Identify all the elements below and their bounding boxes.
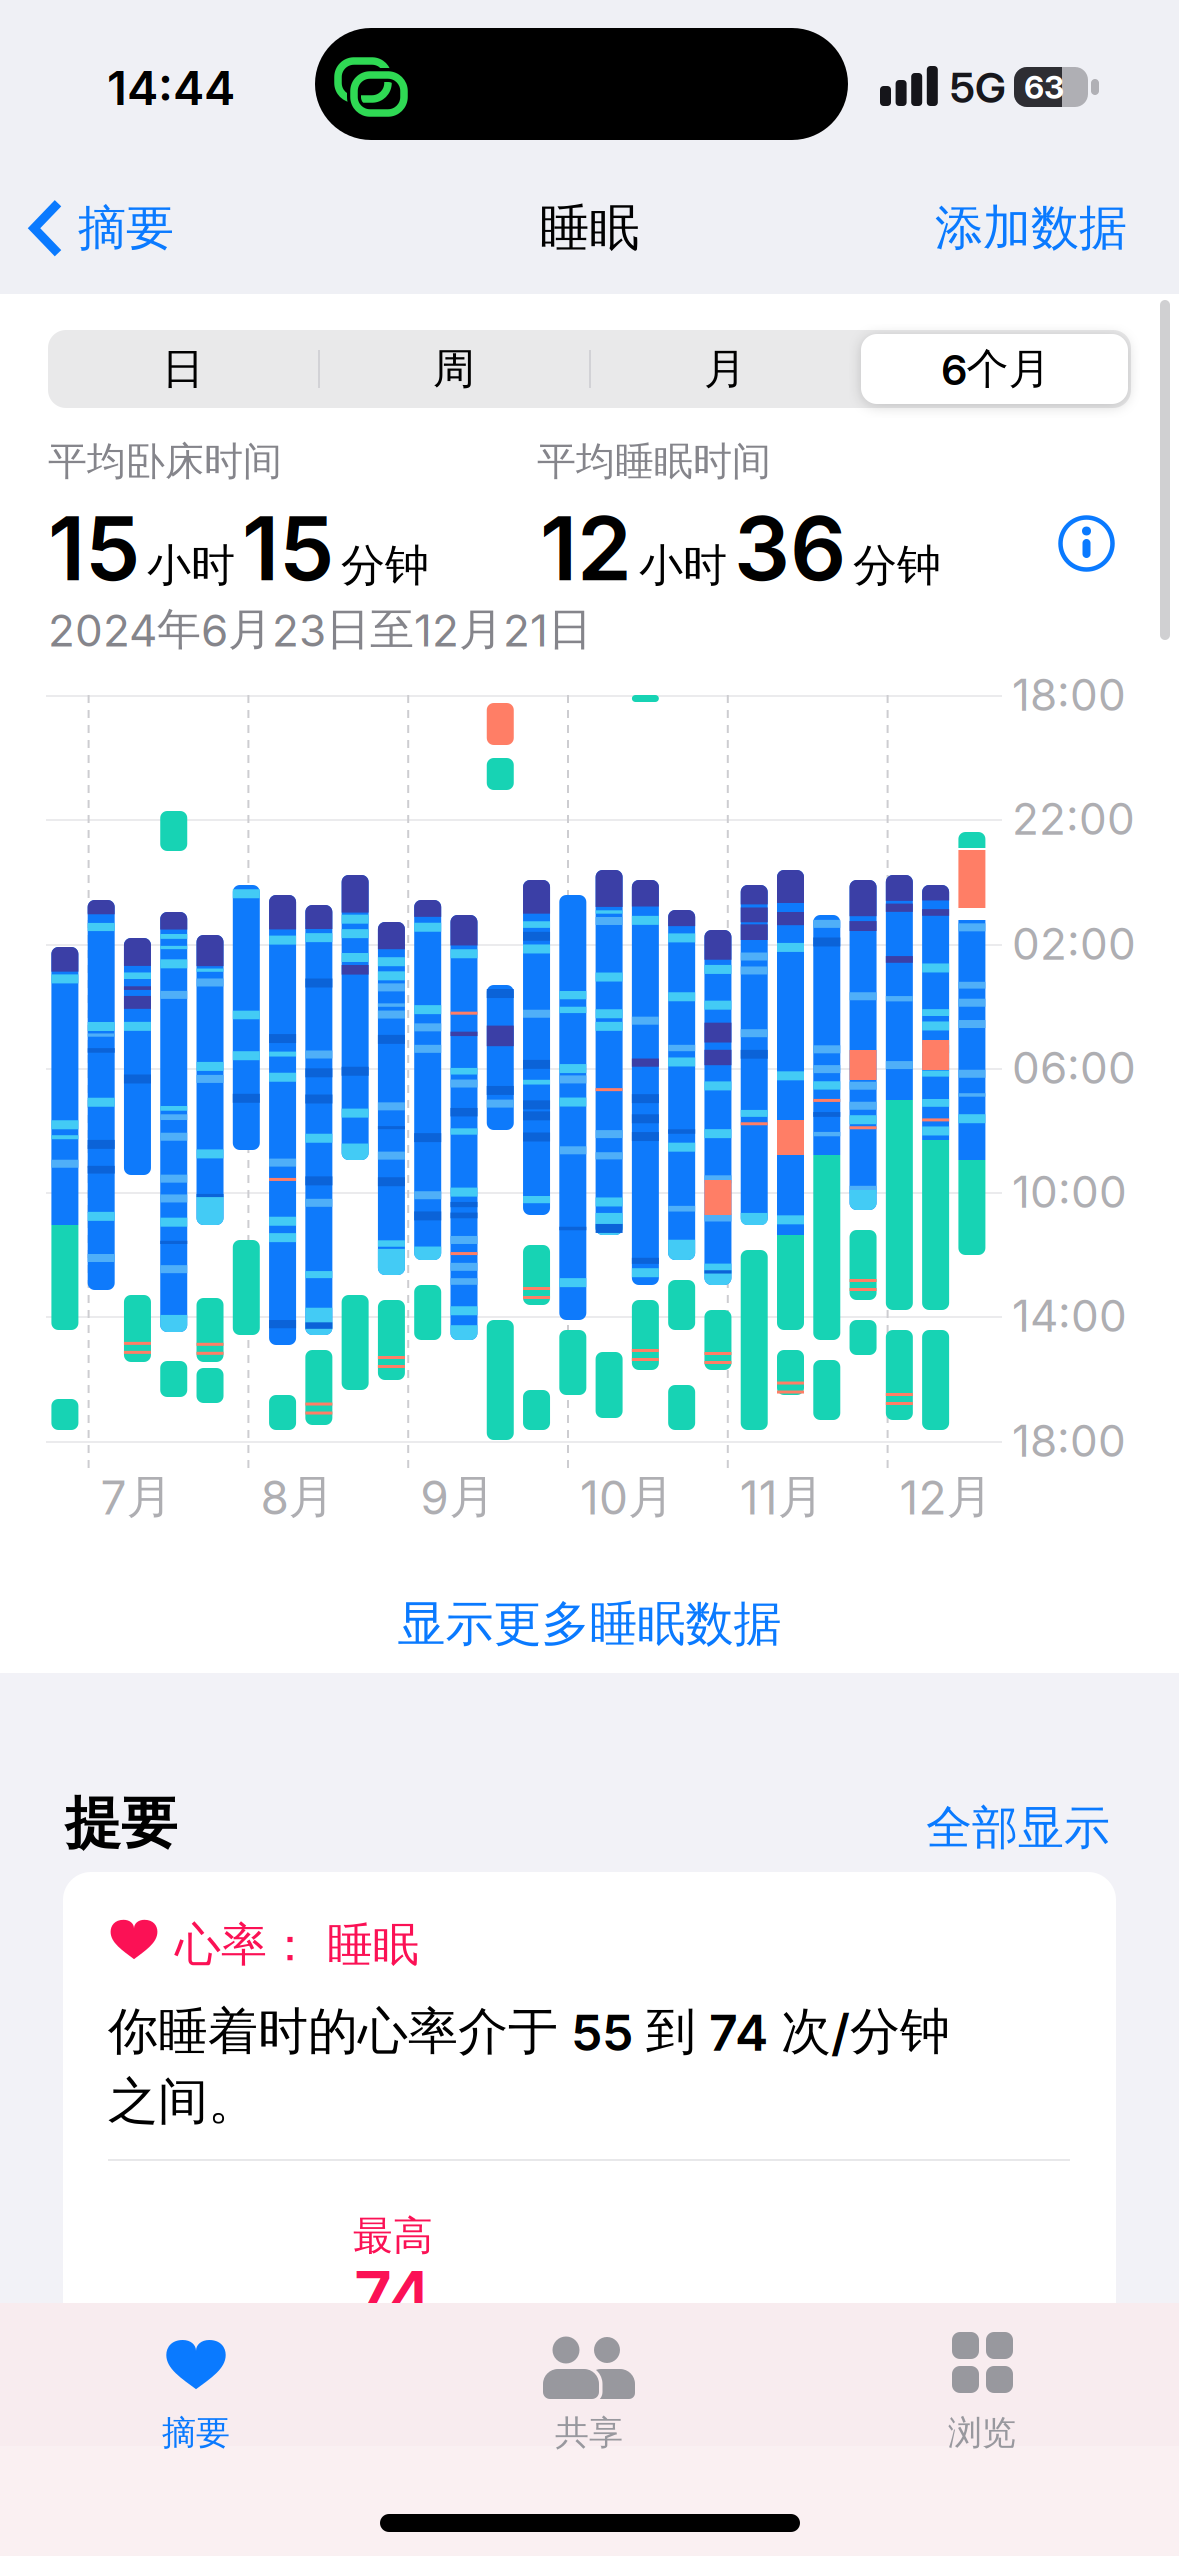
staticText: 9月 <box>420 1468 495 1526</box>
staticText: 2024年6月23日至12月21日 <box>48 602 592 657</box>
staticText: 平均卧床时间 <box>48 437 282 486</box>
staticText: 心率： 睡眠 <box>175 1916 419 1974</box>
staticText: 分钟 <box>341 538 429 593</box>
button[interactable]: 摘要 <box>46 2322 346 2472</box>
staticText: 10:00 <box>1012 1165 1127 1218</box>
staticText: 15 <box>48 495 140 601</box>
staticText: 11月 <box>740 1468 824 1526</box>
staticText: 14:00 <box>1012 1289 1127 1342</box>
button[interactable]: 心率： 睡眠 <box>63 1872 1116 2556</box>
button[interactable]: 周 <box>319 330 589 408</box>
button[interactable]: 月 <box>590 330 860 408</box>
staticText: 显示更多睡眠数据 <box>397 1594 781 1654</box>
staticText: 15 <box>242 495 334 601</box>
staticText: 分钟 <box>853 538 941 593</box>
button[interactable]: 浏览 <box>832 2322 1132 2472</box>
staticText: 月 <box>704 342 746 395</box>
staticText: 36 <box>734 495 846 601</box>
button[interactable]: 信息 <box>1058 515 1115 572</box>
staticText: 摘要 <box>78 198 174 258</box>
staticText: 之间。 <box>108 2070 258 2133</box>
staticText: 10月 <box>580 1468 674 1526</box>
staticText: 74 <box>354 2255 432 2335</box>
staticText: 平均睡眠时间 <box>537 437 771 486</box>
staticText: 最高 <box>353 2211 433 2261</box>
button[interactable]: 全部显示 <box>0 1800 1110 1856</box>
staticText: 12月 <box>900 1468 993 1526</box>
staticText: 周 <box>433 342 475 395</box>
staticText: 提要 <box>65 1788 177 1858</box>
staticText: 睡眠 <box>539 196 639 259</box>
button[interactable]: 摘要 <box>30 198 174 258</box>
staticText: 6个月 <box>941 342 1050 395</box>
staticText: 你睡着时的心率介于 55 到 74 次/分钟 <box>108 2000 950 2063</box>
staticText: 摘要 <box>162 2412 230 2454</box>
staticText: 共享 <box>555 2412 623 2454</box>
button[interactable]: 日 <box>48 330 318 408</box>
staticText: 18:00 <box>1012 1414 1126 1467</box>
staticText: 5G <box>950 62 1006 113</box>
staticText: 14:44 <box>107 60 235 116</box>
button[interactable]: 显示更多睡眠数据 <box>0 1596 1179 1652</box>
staticText: 22:00 <box>1012 792 1135 845</box>
staticText: 12 <box>540 495 632 601</box>
staticText: 浏览 <box>948 2412 1016 2454</box>
button[interactable]: 添加数据 <box>0 198 1127 258</box>
staticText: 63 <box>1024 68 1064 106</box>
staticText: 18:00 <box>1012 668 1126 721</box>
button[interactable]: 6个月 <box>861 330 1131 408</box>
staticText: 全部显示 <box>926 1799 1110 1857</box>
staticText: 8月 <box>260 1468 334 1526</box>
staticText: 7月 <box>101 1468 173 1526</box>
staticText: 添加数据 <box>935 198 1127 258</box>
staticText: 小时 <box>639 538 727 593</box>
button[interactable]: 共享 <box>439 2322 739 2472</box>
staticText: 日 <box>162 342 204 395</box>
staticText: 06:00 <box>1012 1041 1136 1094</box>
staticText: 小时 <box>147 538 235 593</box>
staticText: 02:00 <box>1012 917 1136 970</box>
